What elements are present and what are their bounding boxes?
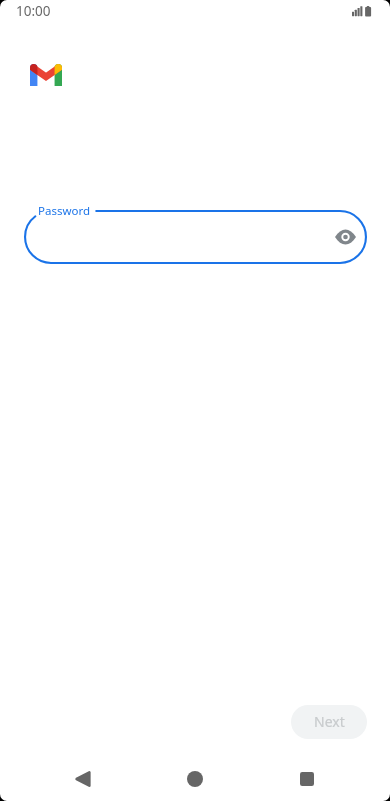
button[interactable]: Back [61, 757, 104, 800]
staticText: Next [314, 712, 345, 731]
button[interactable]: Password [24, 210, 367, 264]
button[interactable]: Show password [323, 215, 367, 259]
button[interactable]: Recent apps [285, 757, 328, 800]
button[interactable]: Home [173, 757, 216, 800]
staticText: 10:00 [16, 2, 51, 20]
staticText: Password [38, 203, 91, 219]
button[interactable]: Next [291, 705, 367, 739]
